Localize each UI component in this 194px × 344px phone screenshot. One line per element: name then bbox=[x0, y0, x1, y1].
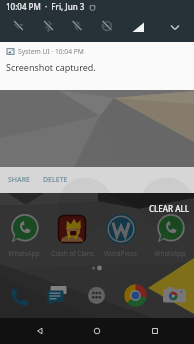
staticText: DELETE bbox=[43, 175, 68, 185]
staticText: SHARE bbox=[8, 175, 30, 185]
button[interactable]: Recents bbox=[137, 318, 173, 344]
staticText: WhatsApp bbox=[8, 249, 40, 258]
button[interactable]: WhatsApp bbox=[0, 213, 48, 258]
button[interactable]: WordPress bbox=[96, 213, 145, 258]
button[interactable]: SHARE bbox=[0, 170, 38, 190]
staticText: Screenshot captured. bbox=[6, 61, 96, 73]
button[interactable]: Camera bbox=[155, 281, 194, 309]
button[interactable]: Phone bbox=[0, 281, 38, 309]
staticText: WordPress bbox=[104, 249, 137, 258]
button[interactable]: Chrome bbox=[116, 281, 155, 309]
button[interactable]: CLEAR ALL bbox=[145, 199, 194, 218]
button[interactable]: Back bbox=[22, 318, 58, 344]
staticText: System UI · 10:04 PM bbox=[18, 47, 84, 56]
staticText: Clash of Clans bbox=[51, 249, 94, 258]
staticText: 10:04 PM · Fri, Jun 3 bbox=[6, 1, 85, 12]
button[interactable]: All apps bbox=[77, 281, 116, 309]
button[interactable]: Home bbox=[79, 318, 115, 344]
button[interactable]: Messages bbox=[38, 281, 77, 309]
button[interactable]: WhatsApp bbox=[145, 213, 194, 258]
staticText: WhatsApp bbox=[154, 249, 186, 258]
staticText: CLEAR ALL bbox=[149, 203, 189, 214]
button[interactable]: DELETE bbox=[38, 170, 73, 190]
button[interactable]: Clash of Clans bbox=[48, 213, 96, 258]
